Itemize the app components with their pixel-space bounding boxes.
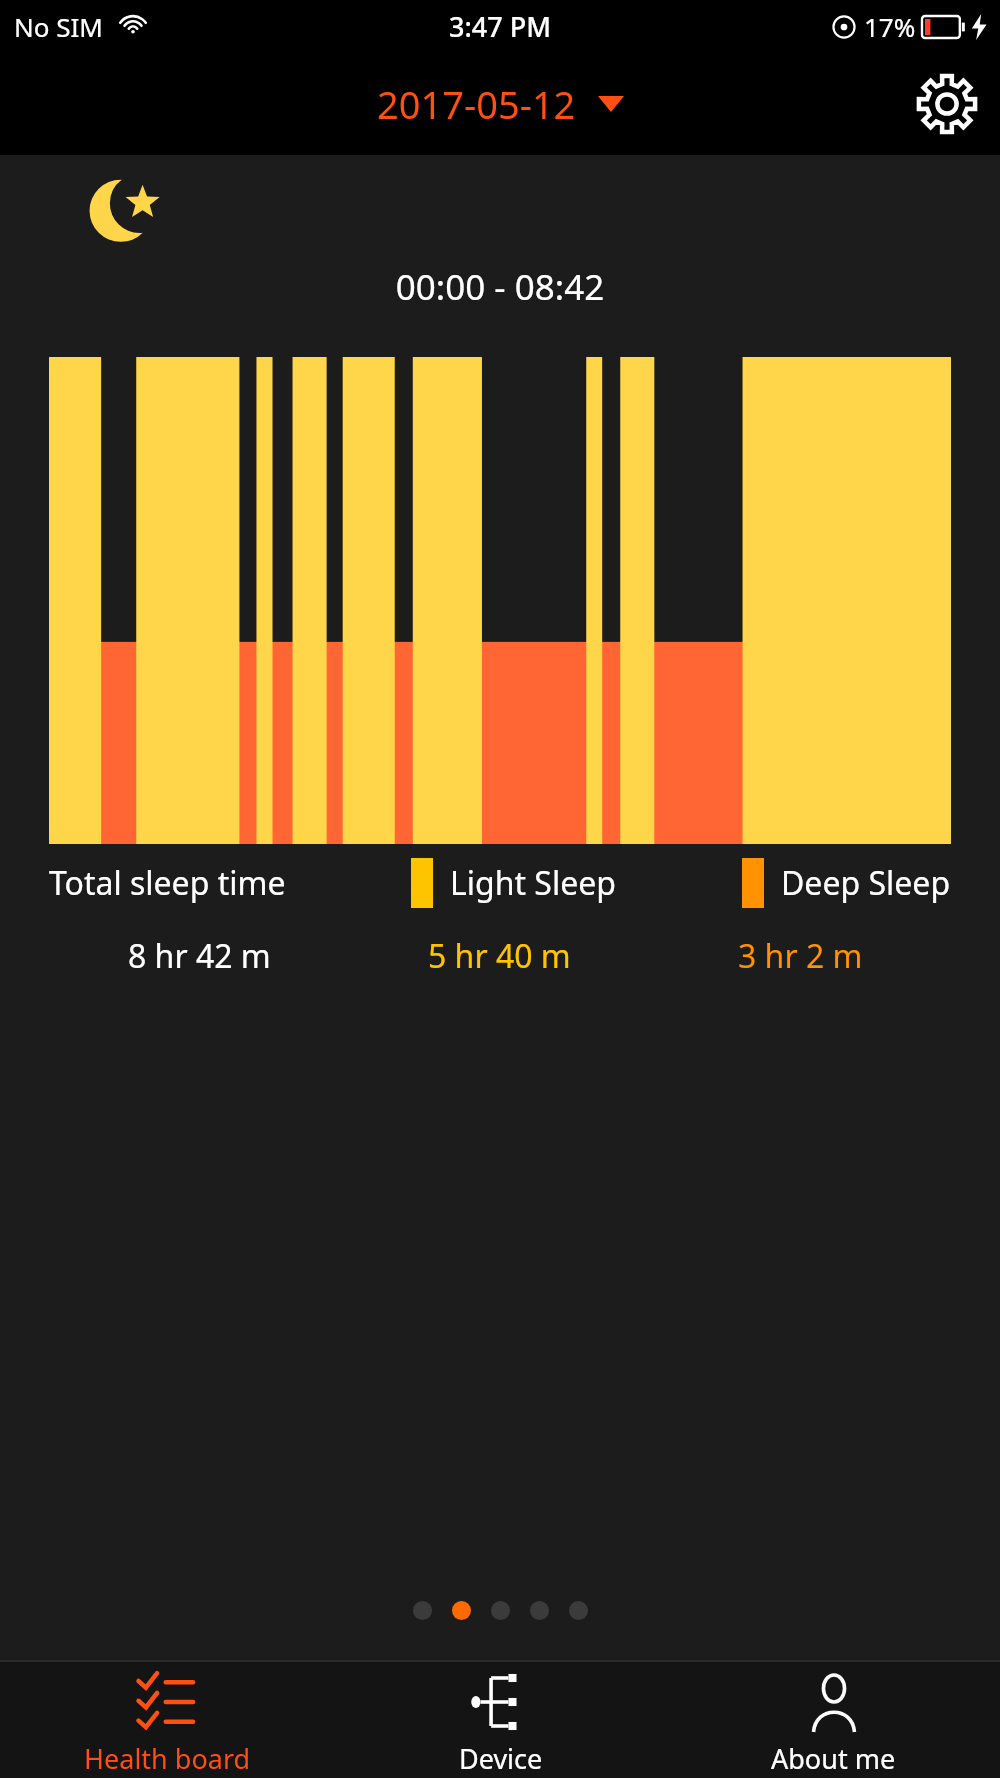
staticText: 17% xyxy=(864,9,916,44)
button[interactable]: 2017-05-12 xyxy=(367,72,634,136)
staticText: 5 hr 40 m xyxy=(428,934,571,978)
staticText: 2017-05-12 xyxy=(377,78,576,130)
button[interactable]: Settings xyxy=(916,73,978,135)
staticText: 3 hr 2 m xyxy=(738,934,863,978)
staticText: Deep Sleep xyxy=(781,861,951,905)
button[interactable]: About me xyxy=(667,1662,1000,1778)
staticText: Health board xyxy=(84,1740,251,1777)
staticText: 8 hr 42 m xyxy=(128,934,271,978)
staticText: About me xyxy=(771,1740,896,1777)
staticText: Total sleep time xyxy=(49,861,286,905)
staticText: 3:47 PM xyxy=(449,8,551,45)
staticText: Light Sleep xyxy=(450,861,616,905)
button[interactable]: Device xyxy=(334,1662,667,1778)
button[interactable]: Health board xyxy=(0,1662,334,1778)
staticText: 00:00 - 08:42 xyxy=(0,263,1000,311)
staticText: No SIM xyxy=(14,9,103,44)
staticText: Device xyxy=(459,1740,543,1777)
